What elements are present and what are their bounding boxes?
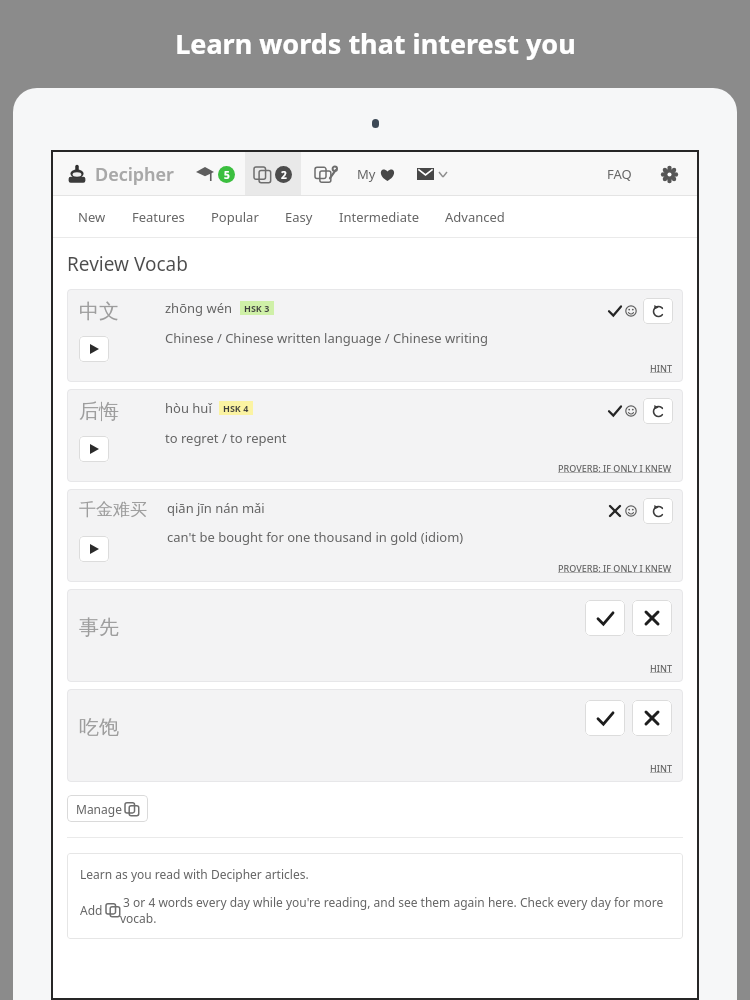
button[interactable]: Play audio (79, 336, 109, 362)
button[interactable]: Tools (309, 152, 343, 196)
button[interactable]: Features (132, 196, 185, 238)
staticText: hòu huǐ (165, 399, 212, 417)
button[interactable]: Intermediate (339, 196, 419, 238)
button[interactable]: PROVERB: IF ONLY I KNEW (558, 562, 672, 574)
staticText: can't be bought for one thousand in gold… (167, 528, 464, 546)
button[interactable]: Undo (643, 298, 673, 324)
button[interactable]: Undo (643, 498, 673, 524)
button[interactable]: HINT (650, 362, 672, 374)
staticText: Features (132, 208, 185, 226)
button[interactable]: Popular (211, 196, 259, 238)
staticText: HSK 3 (244, 302, 270, 314)
button[interactable]: Advanced (445, 196, 505, 238)
staticText: PROVERB: IF ONLY I KNEW (558, 562, 672, 574)
button[interactable]: Easy (285, 196, 313, 238)
button[interactable]: 中文 (67, 289, 683, 382)
staticText: HSK 4 (223, 402, 249, 414)
button[interactable]: Undo (643, 398, 673, 424)
button[interactable]: Play audio (79, 436, 109, 462)
button[interactable]: Mark known (585, 700, 625, 736)
button[interactable]: 吃饱 (67, 689, 683, 782)
button[interactable]: Mark known (585, 600, 625, 636)
staticText: Review Vocab (67, 251, 188, 277)
button[interactable]: Lessons (196, 152, 235, 196)
button[interactable]: Rate (625, 405, 637, 417)
button[interactable]: Correct (609, 305, 621, 317)
staticText: New (78, 208, 106, 226)
staticText: Popular (211, 208, 259, 226)
staticText: HINT (650, 762, 672, 774)
staticText: 事先 (79, 615, 119, 640)
staticText: Learn words that interest you (175, 25, 576, 62)
staticText: 中文 (79, 299, 119, 324)
button[interactable]: Flashcards (254, 152, 292, 196)
staticText: Learn as you read with Decipher articles… (80, 866, 309, 882)
staticText: Easy (285, 208, 313, 226)
button[interactable]: Mark unknown (632, 600, 672, 636)
staticText: Chinese / Chinese written language / Chi… (165, 329, 488, 347)
button[interactable]: HINT (650, 762, 672, 774)
button[interactable]: PROVERB: IF ONLY I KNEW (558, 462, 672, 474)
button[interactable]: FAQ (607, 152, 632, 196)
button[interactable]: Rate (625, 305, 637, 317)
staticText: 3 or 4 words every day while you're read… (120, 894, 670, 926)
button[interactable]: HINT (650, 662, 672, 674)
staticText: 2 (281, 168, 287, 182)
button[interactable]: Messages (417, 152, 447, 196)
staticText: 千金难买 (79, 499, 147, 520)
button[interactable]: Incorrect (609, 505, 621, 517)
button[interactable]: 千金难买 (67, 489, 683, 582)
staticText: zhōng wén (165, 299, 233, 317)
staticText: FAQ (607, 165, 632, 183)
button[interactable]: New (78, 196, 106, 238)
staticText: qiān jīn nán mǎi (167, 499, 265, 517)
staticText: Advanced (445, 208, 505, 226)
button[interactable]: Manage (67, 795, 148, 822)
staticText: HINT (650, 662, 672, 674)
button[interactable]: Play audio (79, 536, 109, 562)
staticText: Manage (76, 801, 122, 817)
staticText: 5 (224, 168, 230, 182)
button[interactable]: 后悔 (67, 389, 683, 482)
staticText: Decipher (95, 162, 174, 187)
button[interactable]: Mark unknown (632, 700, 672, 736)
staticText: 后悔 (79, 399, 119, 424)
staticText: 吃饱 (79, 715, 119, 740)
staticText: Add (80, 902, 106, 918)
staticText: My (357, 165, 376, 183)
button[interactable]: My (357, 152, 395, 196)
staticText: Intermediate (339, 208, 419, 226)
staticText: PROVERB: IF ONLY I KNEW (558, 462, 672, 474)
staticText: HINT (650, 362, 672, 374)
button[interactable]: Settings (654, 152, 684, 196)
staticText: to regret / to repent (165, 429, 287, 447)
button[interactable]: Correct (609, 405, 621, 417)
button[interactable]: Rate (625, 505, 637, 517)
button[interactable]: 事先 (67, 589, 683, 682)
